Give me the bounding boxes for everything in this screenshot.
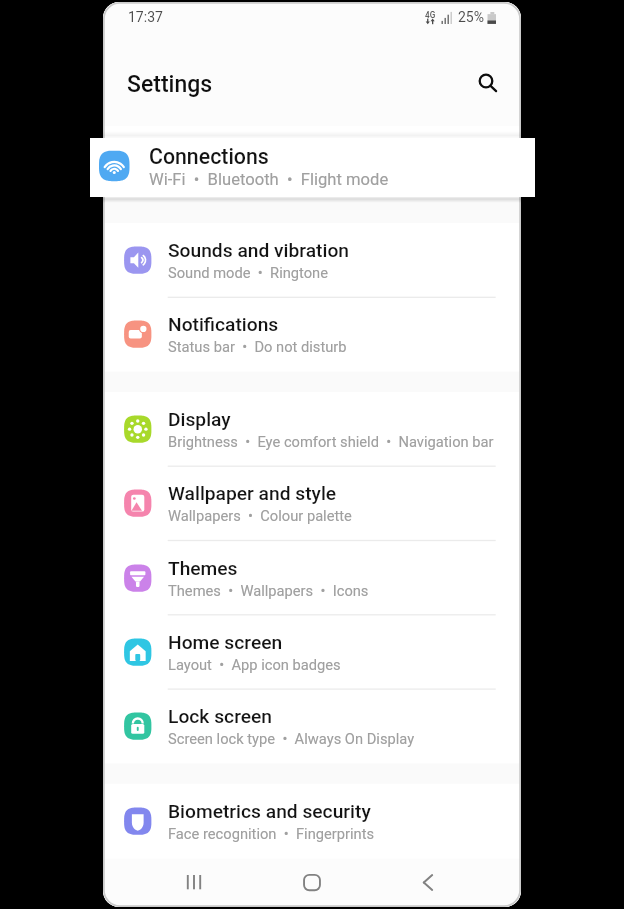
staticText: Wallpapers • Colour palette [168,507,352,524]
staticText: Themes [168,557,238,580]
staticText: Wi-Fi • Bluetooth • Flight mode [149,170,389,189]
button[interactable]: Home [278,858,346,906]
button[interactable]: Home screen [103,615,521,689]
staticText: Face recognition • Fingerprints [168,825,375,842]
staticText: Display [168,408,231,431]
button[interactable]: Recent apps [160,858,228,906]
staticText: Lock screen [168,705,272,728]
staticText: Layout • App icon badges [168,656,341,673]
staticText: Screen lock type • Always On Display [168,730,415,747]
staticText: Biometrics and security [168,800,371,823]
button[interactable]: Sounds and vibration [103,223,521,297]
button[interactable]: Display [103,392,521,466]
button[interactable]: Lock screen [103,689,521,763]
staticText: Status bar • Do not disturb [168,338,347,355]
staticText: Sound mode • Ringtone [168,264,329,281]
button[interactable]: Back [394,858,462,906]
button[interactable]: Notifications [103,297,521,371]
staticText: Notifications [168,313,279,336]
button[interactable]: Themes [103,541,521,615]
staticText: Sounds and vibration [168,239,350,262]
button[interactable]: Biometrics and security [103,784,521,858]
button[interactable]: Search [466,61,506,101]
button[interactable]: Wallpaper and style [103,466,521,540]
staticText: Wallpaper and style [168,482,337,505]
button[interactable]: Connections [90,138,535,197]
staticText: Settings [127,71,213,98]
staticText: 17:37 [128,9,163,25]
staticText: Home screen [168,631,283,654]
staticText: 25% [458,9,484,25]
staticText: Brightness • Eye comfort shield • Naviga… [168,433,494,450]
staticText: Themes • Wallpapers • Icons [168,582,369,599]
staticText: 4G [425,10,436,20]
staticText: Connections [149,144,269,169]
